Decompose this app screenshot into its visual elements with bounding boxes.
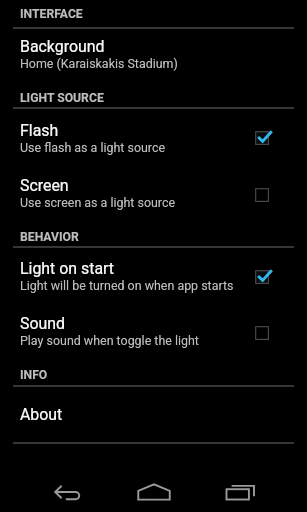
staticText: Use flash as a light source — [20, 140, 166, 155]
button[interactable]: Screen — [0, 166, 307, 221]
button[interactable]: Back — [40, 464, 96, 512]
staticText: Light on start — [20, 259, 115, 278]
staticText: Sound — [20, 314, 65, 333]
staticText: Screen — [20, 176, 69, 195]
staticText: INTERFACE — [20, 7, 83, 21]
staticText: Background — [20, 37, 105, 56]
button[interactable]: About — [0, 386, 307, 443]
staticText: About — [20, 405, 63, 424]
staticText: Play sound when toggle the light — [20, 333, 199, 348]
button[interactable]: Light on start — [0, 247, 307, 304]
button[interactable]: Sound — [0, 305, 307, 358]
button[interactable]: Flash — [0, 108, 307, 165]
staticText: Home (Karaiskakis Stadium) — [20, 56, 178, 71]
staticText: BEHAVIOR — [20, 230, 79, 244]
staticText: Use screen as a light source — [20, 195, 176, 210]
staticText: Light will be turned on when app starts — [20, 278, 234, 293]
button[interactable]: Home — [126, 464, 182, 512]
staticText: Flash — [20, 121, 59, 140]
button[interactable]: Background — [0, 28, 307, 81]
button[interactable]: Recent apps — [212, 464, 268, 512]
staticText: LIGHT SOURCE — [20, 91, 104, 105]
staticText: INFO — [20, 368, 48, 382]
